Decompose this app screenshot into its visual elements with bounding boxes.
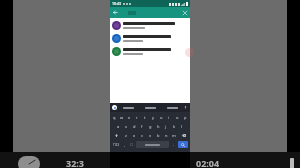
button[interactable]: d xyxy=(130,122,138,131)
button[interactable]: c xyxy=(138,131,146,140)
button[interactable]: Clear search xyxy=(180,8,189,17)
staticText: p xyxy=(184,115,187,120)
staticText: d xyxy=(133,124,136,129)
staticText: c xyxy=(141,133,143,138)
button[interactable]: m xyxy=(170,131,178,140)
staticText: x xyxy=(133,133,136,138)
staticText: u xyxy=(160,115,163,120)
button[interactable] xyxy=(117,103,139,112)
button[interactable]: Google xyxy=(112,105,117,110)
button[interactable]: t xyxy=(141,113,149,122)
button[interactable]: h xyxy=(154,122,162,131)
button[interactable]: w xyxy=(118,113,125,122)
button[interactable]: g xyxy=(146,122,154,131)
button[interactable]: r xyxy=(133,113,141,122)
staticText: e xyxy=(128,115,131,120)
staticText: s xyxy=(125,124,127,129)
staticText: b xyxy=(157,133,160,138)
staticText: , xyxy=(124,142,125,147)
staticText: ?123 xyxy=(113,143,120,147)
staticText: 10:43 xyxy=(112,1,121,6)
button[interactable]: k xyxy=(170,122,178,131)
button[interactable]: Search xyxy=(178,141,188,148)
staticText: o xyxy=(176,115,179,120)
button[interactable]: f xyxy=(138,122,146,131)
staticText: r xyxy=(136,115,138,120)
staticText: m xyxy=(172,133,176,138)
button[interactable]: p xyxy=(181,113,189,122)
staticText: j xyxy=(165,124,167,129)
button[interactable]: Period xyxy=(170,141,177,148)
button[interactable]: Voice input xyxy=(183,105,188,110)
staticText: q xyxy=(113,115,116,120)
staticText: g xyxy=(149,124,152,129)
button[interactable]: o xyxy=(173,113,181,122)
button[interactable]: y xyxy=(149,113,157,122)
staticText: f xyxy=(141,124,143,129)
button[interactable] xyxy=(161,103,183,112)
button[interactable]: e xyxy=(125,113,133,122)
button[interactable]: Symbols xyxy=(111,141,121,148)
button[interactable] xyxy=(139,103,161,112)
staticText: 32:3 xyxy=(66,157,84,168)
staticText: k xyxy=(173,124,176,129)
button[interactable]: s xyxy=(122,122,130,131)
staticText: n xyxy=(165,133,168,138)
button[interactable]: n xyxy=(162,131,170,140)
button[interactable]: Comma xyxy=(121,141,128,148)
staticText: v xyxy=(149,133,152,138)
button[interactable] xyxy=(110,19,190,32)
staticText: y xyxy=(152,115,155,120)
button[interactable]: q xyxy=(111,113,118,122)
staticText: 02:04 xyxy=(196,157,220,168)
button[interactable]: Backspace xyxy=(178,131,189,140)
staticText: z xyxy=(125,133,127,138)
button[interactable] xyxy=(110,32,190,45)
staticText: w xyxy=(120,115,124,120)
button[interactable]: x xyxy=(130,131,138,140)
button[interactable]: Back xyxy=(111,8,120,17)
staticText: l xyxy=(181,124,183,129)
button[interactable]: i xyxy=(165,113,173,122)
button[interactable] xyxy=(110,45,190,58)
button[interactable]: b xyxy=(154,131,162,140)
button[interactable]: z xyxy=(122,131,130,140)
staticText: h xyxy=(157,124,160,129)
button[interactable]: Shift xyxy=(111,131,122,140)
button[interactable]: u xyxy=(157,113,165,122)
staticText: i xyxy=(168,115,170,120)
button[interactable]: Space xyxy=(136,141,169,148)
button[interactable]: Emoji xyxy=(128,141,135,148)
button[interactable]: l xyxy=(178,122,186,131)
staticText: a xyxy=(117,124,120,129)
button[interactable]: j xyxy=(162,122,170,131)
button[interactable]: v xyxy=(146,131,154,140)
button[interactable]: a xyxy=(114,122,122,131)
staticText: . xyxy=(173,142,174,147)
staticText: t xyxy=(144,115,146,120)
